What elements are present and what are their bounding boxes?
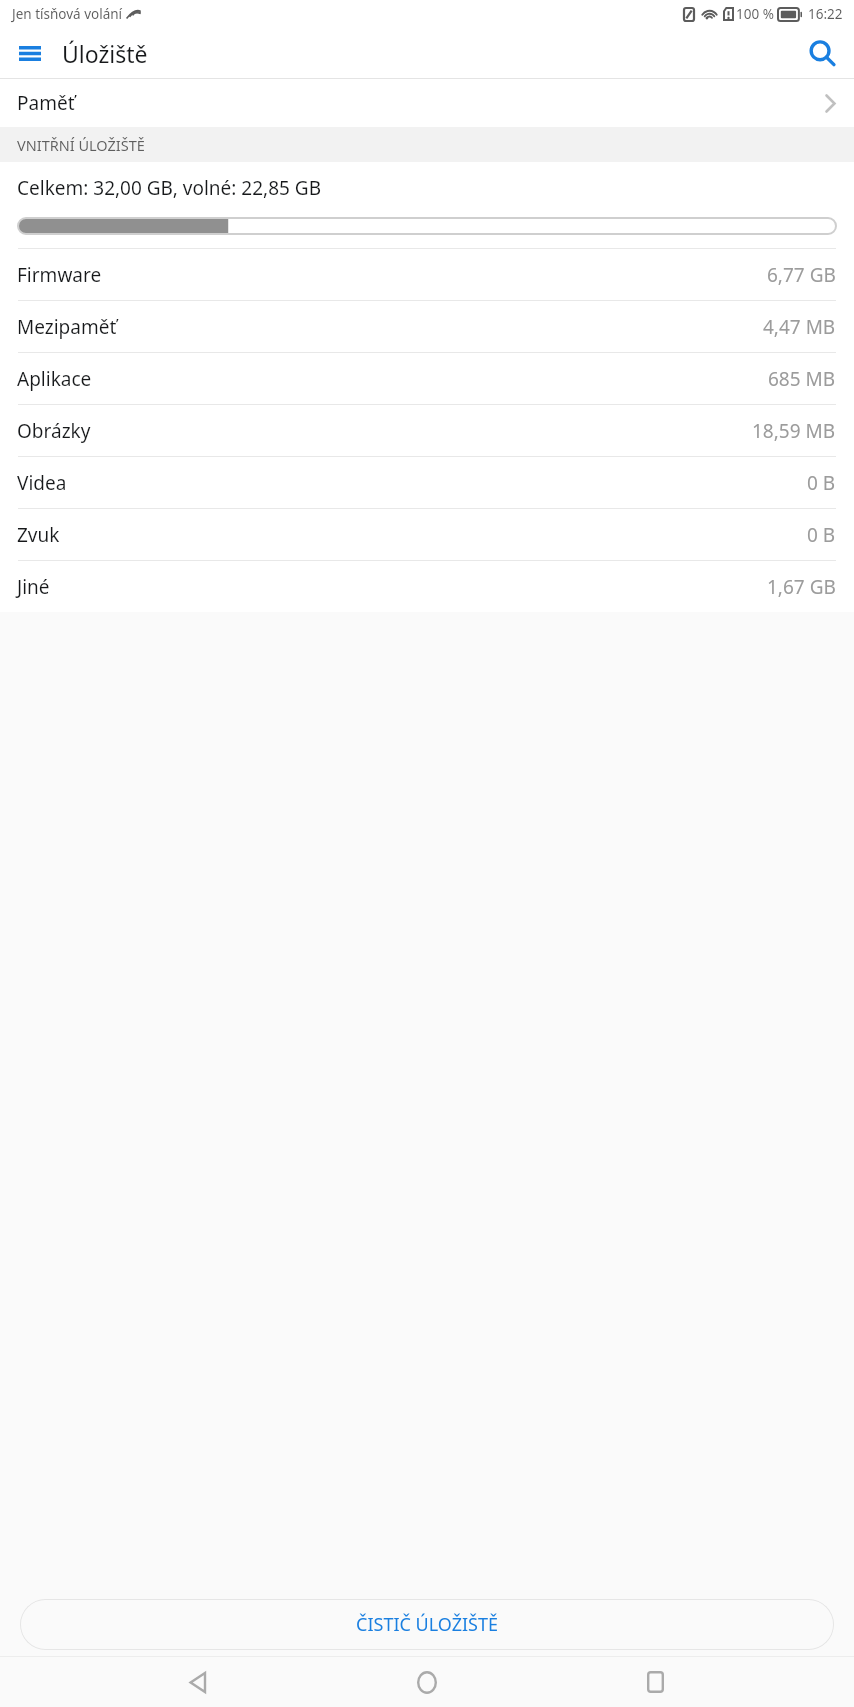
button[interactable]: Menu: [6, 29, 54, 77]
button[interactable]: Obrázky: [0, 405, 854, 456]
staticText: Zvuk: [17, 522, 60, 548]
staticText: 18,59 MB: [752, 418, 836, 444]
button[interactable]: Search: [798, 29, 846, 77]
button[interactable]: Mezipaměť: [0, 301, 854, 352]
staticText: Videa: [17, 470, 67, 496]
staticText: Obrázky: [17, 418, 91, 444]
button[interactable]: Paměť: [0, 79, 854, 127]
staticText: Celkem: 32,00 GB, volné: 22,85 GB: [17, 175, 322, 201]
staticText: 6,77 GB: [767, 262, 836, 288]
staticText: Mezipaměť: [17, 314, 117, 340]
staticText: Aplikace: [17, 366, 92, 392]
button[interactable]: Aplikace: [0, 353, 854, 404]
button[interactable]: ČISTIČ ÚLOŽIŠTĚ: [20, 1599, 834, 1650]
staticText: Firmware: [17, 262, 102, 288]
button[interactable]: Zvuk: [0, 509, 854, 560]
staticText: Jiné: [17, 574, 50, 600]
staticText: Úložiště: [62, 38, 148, 69]
staticText: 4,47 MB: [763, 314, 836, 340]
button[interactable]: Home: [398, 1657, 456, 1707]
staticText: 0 B: [807, 470, 836, 496]
button[interactable]: Jiné: [0, 561, 854, 612]
staticText: 16:22: [808, 5, 843, 23]
staticText: 685 MB: [768, 366, 836, 392]
staticText: 0 B: [807, 522, 836, 548]
button[interactable]: Recent apps: [626, 1657, 684, 1707]
staticText: 1,67 GB: [767, 574, 836, 600]
staticText: Jen tísňová volání: [12, 5, 123, 23]
staticText: Paměť: [17, 90, 75, 116]
button[interactable]: Firmware: [0, 249, 854, 300]
button[interactable]: Videa: [0, 457, 854, 508]
staticText: ČISTIČ ÚLOŽIŠTĚ: [356, 1612, 498, 1637]
button[interactable]: Back: [170, 1657, 228, 1707]
staticText: 100 %: [736, 5, 774, 23]
staticText: VNITŘNÍ ÚLOŽIŠTĚ: [17, 135, 145, 155]
